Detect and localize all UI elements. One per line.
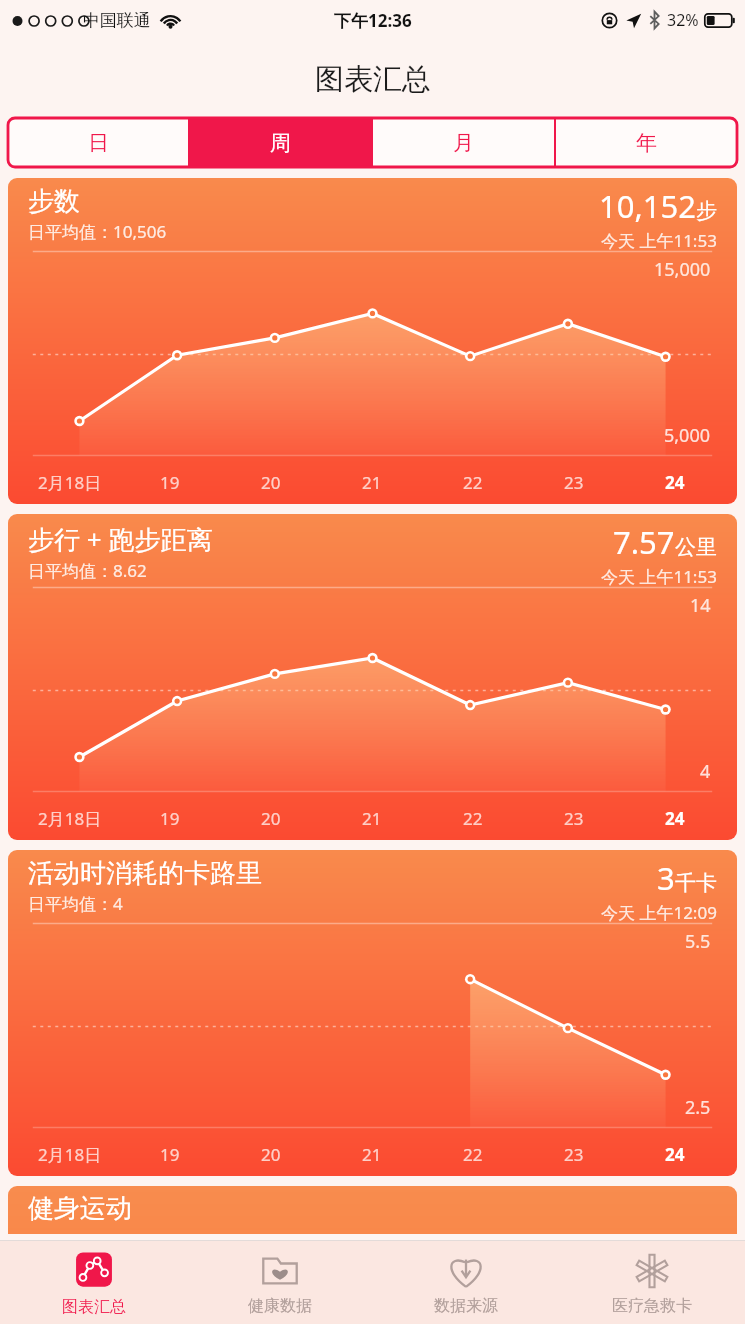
staticText: 15,000	[654, 257, 711, 282]
staticText: 14	[690, 593, 711, 618]
staticText: 图表汇总	[62, 1297, 126, 1317]
staticText: 步数	[28, 185, 80, 218]
staticText: 周	[270, 130, 291, 156]
staticText: 23	[564, 807, 584, 830]
staticText: 19	[160, 1143, 180, 1166]
staticText: 4	[700, 759, 711, 784]
staticText: 日平均值：4	[28, 892, 123, 915]
staticText: 月	[453, 130, 474, 156]
staticText: 下午12:36	[334, 9, 412, 32]
staticText: 23	[564, 471, 584, 494]
staticText: 24	[665, 807, 685, 830]
staticText: 7.57	[613, 521, 675, 563]
staticText: 21	[362, 471, 382, 494]
button[interactable]: 月	[373, 118, 554, 167]
staticText: 22	[463, 1143, 483, 1166]
staticText: 中国联通	[83, 10, 151, 31]
staticText: 2.5	[685, 1095, 711, 1120]
staticText: 2月18日	[38, 1143, 102, 1166]
button[interactable]: 医疗急救卡	[559, 1241, 745, 1324]
staticText: 公里	[675, 534, 717, 560]
staticText: 5,000	[664, 423, 711, 448]
staticText: 今天 上午12:09	[601, 901, 717, 924]
button[interactable]: 图表汇总	[0, 1241, 187, 1324]
staticText: 19	[160, 807, 180, 830]
staticText: 21	[362, 807, 382, 830]
staticText: 活动时消耗的卡路里	[28, 857, 262, 890]
staticText: 32%	[667, 9, 699, 31]
staticText: 24	[665, 471, 685, 494]
staticText: 医疗急救卡	[612, 1296, 692, 1316]
button[interactable]: 步数	[8, 178, 737, 504]
staticText: 2月18日	[38, 807, 102, 830]
staticText: 日	[88, 130, 109, 156]
staticText: 3	[657, 857, 675, 899]
staticText: 健康数据	[248, 1296, 312, 1316]
staticText: 日平均值：10,506	[28, 220, 167, 243]
button[interactable]: 年	[556, 118, 737, 167]
staticText: 图表汇总	[315, 61, 431, 98]
staticText: 步行 + 跑步距离	[28, 521, 213, 557]
button[interactable]: 活动时消耗的卡路里	[8, 850, 737, 1176]
staticText: 21	[362, 1143, 382, 1166]
staticText: 22	[463, 471, 483, 494]
button[interactable]: 日	[8, 118, 188, 167]
button[interactable]: 周	[190, 118, 371, 167]
staticText: 步	[696, 198, 717, 224]
staticText: 23	[564, 1143, 584, 1166]
button[interactable]: 数据来源	[373, 1241, 559, 1324]
staticText: 今天 上午11:53	[601, 229, 717, 252]
button[interactable]: 步行 + 跑步距离	[8, 514, 737, 840]
staticText: 20	[261, 471, 281, 494]
button[interactable]: 健康数据	[187, 1241, 373, 1324]
staticText: 24	[665, 1143, 685, 1166]
staticText: 10,152	[599, 185, 696, 227]
staticText: 健身运动	[28, 1192, 132, 1225]
staticText: 22	[463, 807, 483, 830]
staticText: 数据来源	[434, 1296, 498, 1316]
staticText: 20	[261, 807, 281, 830]
staticText: 20	[261, 1143, 281, 1166]
staticText: 日平均值：8.62	[28, 559, 147, 582]
staticText: 千卡	[675, 870, 717, 896]
staticText: 5.5	[685, 929, 711, 954]
staticText: 2月18日	[38, 471, 102, 494]
staticText: 年	[636, 130, 657, 156]
button[interactable]: 健身运动	[8, 1186, 737, 1234]
staticText: 今天 上午11:53	[601, 565, 717, 588]
staticText: 19	[160, 471, 180, 494]
